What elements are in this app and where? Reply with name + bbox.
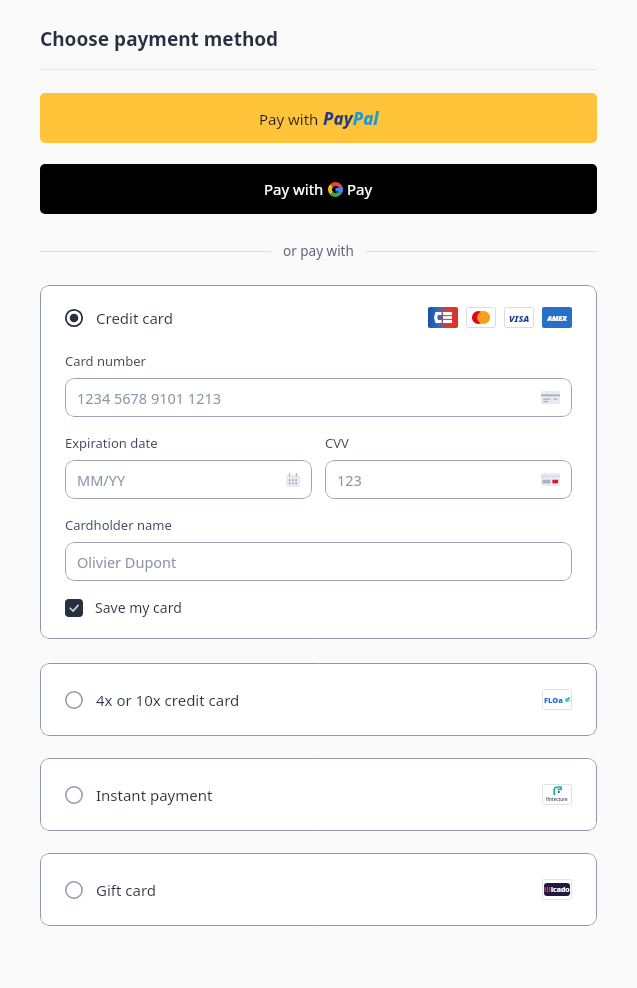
staticText: 1234 5678 9101 1213 bbox=[77, 388, 222, 408]
staticText: Pay with bbox=[264, 179, 328, 199]
button[interactable]: Olivier Dupont bbox=[65, 542, 572, 581]
staticText: Expiration date bbox=[65, 434, 158, 452]
staticText: fintecture bbox=[546, 796, 568, 802]
button[interactable]: Gift card bbox=[40, 853, 597, 926]
staticText: Pay bbox=[347, 179, 373, 199]
staticText: Save my card bbox=[95, 598, 182, 617]
button[interactable]: MM/YY bbox=[65, 460, 312, 499]
staticText: MM/YY bbox=[77, 470, 126, 490]
button[interactable]: Pay with bbox=[40, 164, 597, 214]
staticText: Olivier Dupont bbox=[77, 552, 177, 572]
staticText: or pay with bbox=[283, 242, 354, 260]
button[interactable]: Instant payment bbox=[40, 758, 597, 831]
staticText: VISA bbox=[509, 312, 530, 324]
staticText: PayPal bbox=[323, 107, 379, 130]
staticText: FLOa bbox=[544, 695, 563, 705]
staticText: ill bbox=[544, 885, 551, 895]
staticText: Pay with bbox=[259, 109, 323, 129]
staticText: CVV bbox=[325, 434, 349, 452]
staticText: AMEX bbox=[547, 314, 567, 322]
staticText: Gift card bbox=[96, 880, 157, 900]
button[interactable]: Pay with bbox=[40, 93, 597, 143]
staticText: Card number bbox=[65, 352, 146, 370]
staticText: 123 bbox=[337, 470, 362, 490]
staticText: Credit card bbox=[96, 308, 173, 328]
button[interactable]: Save my card bbox=[65, 598, 182, 617]
staticText: Choose payment method bbox=[40, 26, 279, 52]
staticText: icado bbox=[551, 885, 570, 895]
staticText: 4x or 10x credit card bbox=[96, 690, 240, 710]
staticText: Instant payment bbox=[96, 785, 213, 805]
button[interactable]: 123 bbox=[325, 460, 572, 499]
button[interactable]: Credit card bbox=[65, 307, 572, 328]
button[interactable]: 1234 5678 9101 1213 bbox=[65, 378, 572, 417]
button[interactable]: 4x or 10x credit card bbox=[40, 663, 597, 736]
staticText: Cardholder name bbox=[65, 516, 172, 534]
